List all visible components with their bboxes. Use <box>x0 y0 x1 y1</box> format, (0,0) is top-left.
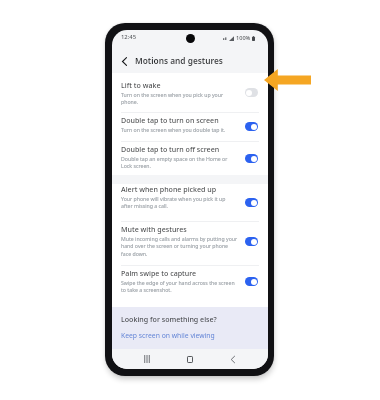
button[interactable]: Toggle <box>245 277 258 286</box>
button[interactable]: Back <box>225 351 241 367</box>
button[interactable]: Palm swipe to capture <box>112 265 268 307</box>
button[interactable]: Mute with gestures <box>112 221 268 265</box>
staticText: Mute incoming calls and alarms by puttin… <box>121 235 238 258</box>
staticText: Mute with gestures <box>121 224 187 234</box>
staticText: Turn on the screen when you double tap i… <box>121 126 226 133</box>
button[interactable]: Navigate up <box>116 53 132 69</box>
staticText: Swipe the edge of your hand across the s… <box>121 279 238 294</box>
button[interactable]: Toggle <box>245 154 258 163</box>
button[interactable]: Recents <box>139 351 155 367</box>
button[interactable]: Toggle <box>245 88 258 97</box>
button[interactable]: Toggle <box>245 122 258 131</box>
button[interactable]: Double tap to turn on screen <box>112 112 268 141</box>
button[interactable]: Home <box>182 351 198 367</box>
staticText: Looking for something else? <box>121 314 217 324</box>
button[interactable]: Lift to wake <box>112 73 268 112</box>
staticText: 100% <box>236 34 251 42</box>
staticText: Your phone will vibrate when you pick it… <box>121 195 238 210</box>
staticText: 12:45 <box>121 33 137 41</box>
other: Highlight pointer <box>264 69 311 91</box>
staticText: Motions and gestures <box>135 55 223 66</box>
staticText: Alert when phone picked up <box>121 184 217 194</box>
staticText: Double tap to turn on screen <box>121 115 219 125</box>
button[interactable]: Alert when phone picked up <box>112 184 268 221</box>
staticText: Double tap to turn off screen <box>121 144 220 154</box>
staticText: Double tap an empty space on the Home or… <box>121 155 238 170</box>
staticText: Palm swipe to capture <box>121 268 197 278</box>
staticText: Lift to wake <box>121 80 161 90</box>
button[interactable]: Keep screen on while viewing <box>121 331 215 340</box>
button[interactable]: Double tap to turn off screen <box>112 141 268 175</box>
button[interactable]: Toggle <box>245 237 258 246</box>
staticText: Turn on the screen when you pick up your… <box>121 91 238 106</box>
button[interactable]: Toggle <box>245 198 258 207</box>
